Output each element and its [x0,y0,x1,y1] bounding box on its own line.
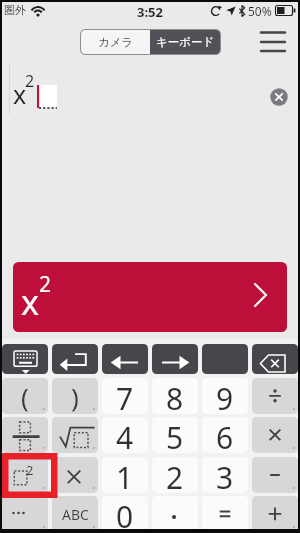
staticText: x [21,279,39,325]
staticText: x [13,77,27,111]
staticText: 0 [116,496,134,532]
button[interactable] [202,344,248,374]
button[interactable] [2,496,48,532]
button[interactable]: 6 [202,417,248,453]
staticText: 4 [116,417,134,453]
button[interactable]: カメラ [81,30,150,54]
button[interactable] [2,417,48,453]
button[interactable] [52,457,98,493]
button[interactable]: 0 [102,496,148,532]
button[interactable] [252,496,298,532]
button[interactable] [152,344,198,374]
button[interactable]: 1 [102,457,148,493]
button[interactable] [52,417,98,453]
staticText: 6 [216,417,234,453]
button[interactable] [52,344,98,374]
button[interactable]: 9 [202,378,248,414]
button[interactable]: キーボード [150,30,220,54]
button[interactable]: 4 [102,417,148,453]
staticText: 9 [216,378,234,414]
staticText: 8 [166,378,184,414]
staticText: 3:52 [137,3,163,21]
staticText: 2 [39,270,52,299]
staticText: 7 [116,378,134,414]
staticText: 1 [116,457,134,493]
button[interactable] [255,26,291,58]
staticText: 3 [216,457,234,493]
button[interactable]: 3 [202,457,248,493]
button[interactable]: 2 [152,457,198,493]
button[interactable] [252,457,298,493]
button[interactable] [252,417,298,453]
staticText: 2 [25,70,35,92]
staticText: 圏外 [4,3,26,17]
staticText: ) [71,379,79,414]
button[interactable]: 2 [2,457,48,493]
button[interactable] [252,378,298,414]
staticText: 50% [248,3,272,19]
staticText: 2 [166,457,184,493]
button[interactable]: 8 [152,378,198,414]
button[interactable]: ABC [52,496,98,532]
button[interactable] [202,496,248,532]
button[interactable] [252,344,298,374]
staticText: キーボード [156,35,215,49]
button[interactable] [102,344,148,374]
staticText: ( [21,379,29,414]
staticText: ABC [62,505,89,524]
button[interactable]: ( [2,378,48,414]
button[interactable]: 5 [152,417,198,453]
button[interactable]: 7 [102,378,148,414]
button[interactable] [2,344,48,374]
button[interactable]: x [13,262,287,332]
staticText: カメラ [98,35,134,49]
button[interactable] [152,496,198,532]
button[interactable]: ) [52,378,98,414]
button[interactable] [270,88,288,106]
staticText: 2 [26,461,34,479]
staticText: 5 [166,417,184,453]
